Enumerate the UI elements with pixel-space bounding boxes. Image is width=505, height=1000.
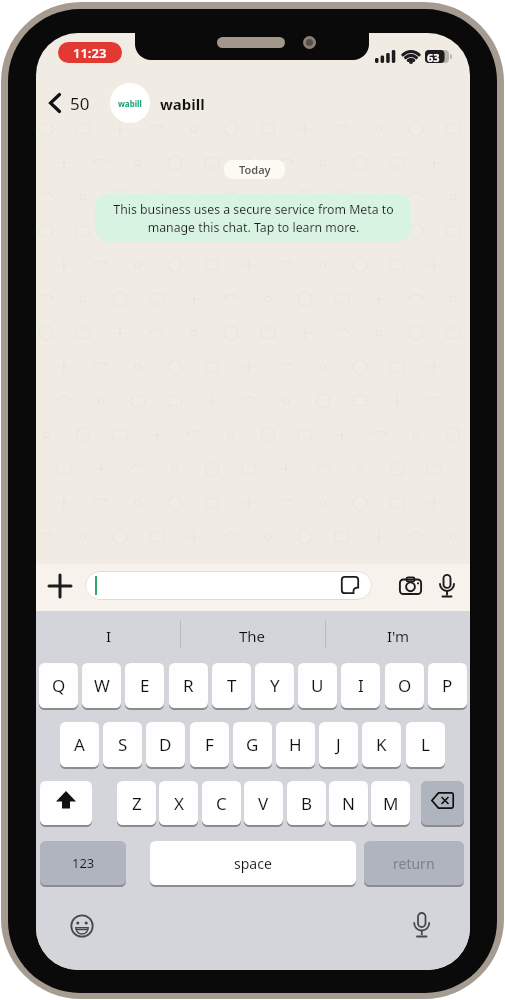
- button[interactable]: The: [239, 626, 266, 646]
- staticText: return: [393, 854, 435, 873]
- button[interactable]: 50: [70, 92, 90, 115]
- button[interactable]: W: [82, 663, 121, 708]
- staticText: 123: [72, 854, 95, 872]
- button[interactable]: I'm: [387, 626, 410, 646]
- button[interactable]: B: [287, 781, 326, 825]
- staticText: X: [174, 792, 184, 815]
- staticText: T: [227, 674, 237, 697]
- button[interactable]: [48, 574, 72, 598]
- button[interactable]: 123: [40, 841, 126, 885]
- staticText: M: [383, 792, 399, 815]
- staticText: W: [94, 674, 110, 697]
- staticText: K: [376, 733, 387, 756]
- staticText: P: [442, 674, 453, 697]
- button[interactable]: A: [60, 722, 99, 767]
- button[interactable]: V: [244, 781, 283, 825]
- button[interactable]: This business uses a secure service from…: [95, 194, 411, 241]
- button[interactable]: T: [212, 663, 251, 708]
- staticText: S: [118, 733, 128, 756]
- button[interactable]: F: [190, 722, 229, 767]
- button[interactable]: L: [406, 722, 445, 767]
- staticText: I: [358, 674, 364, 697]
- button[interactable]: wabill: [160, 94, 205, 114]
- button[interactable]: [70, 914, 94, 938]
- staticText: E: [140, 674, 150, 697]
- staticText: Q: [52, 674, 66, 697]
- button[interactable]: I: [106, 626, 112, 646]
- button[interactable]: return: [364, 841, 464, 885]
- staticText: V: [258, 792, 269, 815]
- button[interactable]: R: [169, 663, 208, 708]
- button[interactable]: 11:23: [58, 42, 122, 63]
- button[interactable]: I: [341, 663, 380, 708]
- button[interactable]: [438, 574, 456, 599]
- staticText: O: [398, 674, 412, 697]
- staticText: U: [311, 674, 324, 697]
- button[interactable]: U: [298, 663, 337, 708]
- button[interactable]: K: [362, 722, 401, 767]
- button[interactable]: P: [428, 663, 467, 708]
- button[interactable]: Q: [39, 663, 78, 708]
- button[interactable]: H: [276, 722, 315, 767]
- staticText: This business uses a secure service from…: [113, 201, 394, 235]
- button[interactable]: space: [150, 841, 356, 885]
- button[interactable]: [412, 912, 431, 939]
- staticText: G: [246, 733, 259, 756]
- button[interactable]: J: [319, 722, 358, 767]
- staticText: N: [342, 792, 355, 815]
- staticText: Today: [239, 162, 271, 177]
- button[interactable]: [48, 93, 62, 113]
- button[interactable]: [421, 781, 464, 825]
- staticText: 11:23: [73, 44, 107, 62]
- staticText: B: [301, 792, 313, 815]
- staticText: J: [336, 733, 341, 756]
- button[interactable]: E: [125, 663, 164, 708]
- button[interactable]: M: [371, 781, 410, 825]
- staticText: F: [205, 733, 214, 756]
- staticText: H: [289, 733, 302, 756]
- button[interactable]: Y: [255, 663, 294, 708]
- button[interactable]: G: [233, 722, 272, 767]
- staticText: Y: [270, 674, 280, 697]
- staticText: wabill: [118, 98, 142, 109]
- button[interactable]: wabill: [110, 83, 150, 123]
- button[interactable]: S: [103, 722, 142, 767]
- button[interactable]: O: [385, 663, 424, 708]
- button[interactable]: D: [146, 722, 185, 767]
- button[interactable]: [85, 571, 372, 600]
- staticText: R: [183, 674, 194, 697]
- button[interactable]: Z: [117, 781, 156, 825]
- button[interactable]: [399, 577, 422, 595]
- button[interactable]: [40, 781, 92, 825]
- staticText: L: [421, 733, 430, 756]
- button[interactable]: C: [202, 781, 241, 825]
- button[interactable]: X: [159, 781, 198, 825]
- staticText: A: [74, 733, 85, 756]
- staticText: 63: [427, 50, 440, 65]
- button[interactable]: N: [329, 781, 368, 825]
- staticText: space: [234, 854, 272, 873]
- staticText: C: [216, 792, 227, 815]
- staticText: D: [159, 733, 172, 756]
- staticText: Z: [132, 792, 142, 815]
